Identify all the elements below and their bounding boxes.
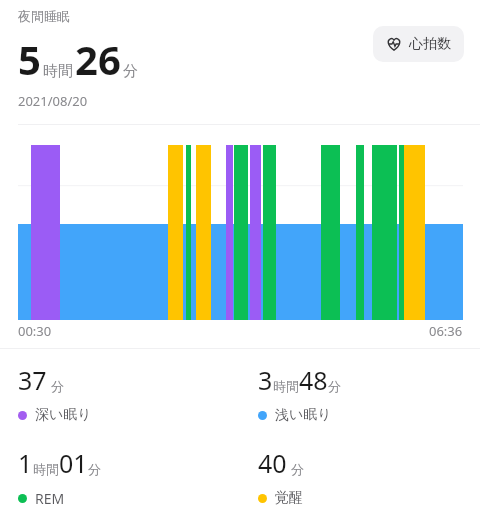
staticText: 心拍数	[409, 35, 451, 53]
staticText: 40	[258, 446, 287, 480]
staticText: 5	[18, 32, 41, 86]
staticText: 分	[123, 62, 138, 81]
button[interactable]: 40	[240, 446, 480, 507]
staticText: 06:36	[429, 322, 463, 340]
button[interactable]: Heart rate	[373, 26, 464, 62]
staticText: 浅い眠り	[275, 406, 332, 424]
staticText: 深い眠り	[35, 406, 92, 424]
staticText: 01	[59, 446, 88, 480]
staticText: 3	[258, 363, 273, 397]
staticText: 48	[299, 363, 328, 397]
staticText: 1	[18, 446, 33, 480]
staticText: 37	[18, 363, 47, 397]
staticText: 分	[51, 378, 64, 394]
staticText: 覚醒	[275, 489, 303, 507]
staticText: 分	[88, 461, 101, 477]
staticText: 分	[291, 461, 304, 477]
button[interactable]: 1	[0, 446, 240, 508]
staticText: 分	[328, 378, 341, 394]
staticText: 夜間睡眠	[18, 8, 70, 24]
staticText: 26	[75, 32, 121, 86]
button[interactable]: 3	[240, 363, 480, 424]
staticText: 時間	[33, 461, 59, 477]
button[interactable]: 37	[0, 363, 240, 424]
staticText: 2021/08/20	[18, 92, 88, 110]
staticText: 時間	[273, 378, 299, 394]
staticText: 時間	[43, 62, 73, 81]
staticText: 00:30	[18, 322, 52, 340]
staticText: REM	[35, 489, 65, 508]
other: Heart rate	[386, 36, 402, 52]
